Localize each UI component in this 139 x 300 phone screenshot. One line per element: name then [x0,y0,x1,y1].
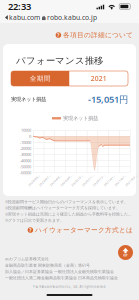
staticText: -20000 [20,146,31,151]
button[interactable]: 2021 [69,71,128,86]
staticText: 全期間 [30,74,51,83]
button[interactable]: 全期間 [11,71,69,86]
staticText: -15,051円 [88,93,128,105]
staticText: -40000 [20,158,31,163]
staticText: ※グラフは日次で更新されます。 [5,218,64,223]
button[interactable]: kabu.com [3,13,42,22]
staticText: 2020/07/03 [37,179,52,182]
staticText: 2020/09/07 [59,179,74,182]
staticText: 2021 [91,74,107,83]
staticText: ? [29,227,32,234]
staticText: 2021/03/26 [123,179,138,182]
staticText: 実現ネット損益 [63,115,98,122]
staticText: -10000 [20,140,31,145]
button[interactable]: ? [28,226,133,234]
staticText: 2021/01/19 [102,179,117,182]
staticText: kabu.com [9,13,40,22]
staticText: ※実現ネット損益は売買により確定した損益から手数料等を控除した… [5,211,131,217]
staticText: 金融商品取引業者 関東財務局長（金商）第61号 [5,263,90,268]
staticText: -60000 [20,170,31,175]
button[interactable]: ? [56,31,133,39]
button[interactable]: ページの先頭へ戻る [118,245,133,260]
staticText: 加入協会／日本証券業協会 一般社団法人金融先物取引業協会 [5,269,114,274]
staticText: 2020/08/05 [48,179,63,182]
staticText: 実現ネット損益 [11,96,46,102]
staticText: 22:33 [8,0,31,13]
staticText: © au Kabucom Securities Co., Ltd. All ri… [32,285,106,288]
staticText: ※投資顧問報酬はハイウォーターマーク方式を採用しています。 [5,205,120,210]
staticText: TOP [123,254,128,257]
staticText: 2020/11/11 [80,179,95,182]
staticText: 各項目の詳細について [63,31,133,39]
staticText: ※投資顧問サービス開始日からのパフォーマンスを表示しています。 [5,199,128,204]
staticText: ? [57,32,60,39]
staticText: 2021/02/22 [113,179,128,182]
staticText: robo.kabu.co.jp [47,13,97,22]
staticText: パフォーマンス推移 [16,55,103,66]
staticText: 10000 [21,128,31,133]
staticText: 一般社団法人第二種金融商品取引業協会 日本商品先物取引協会 [5,275,118,280]
staticText: -50000 [20,164,31,169]
staticText: 2020/10/08 [70,179,85,182]
staticText: 2020/06/01 [26,179,41,182]
staticText: 0 [29,134,31,139]
staticText: auカブコム証券株式会社 [5,256,49,261]
staticText: ハイウォーターマーク方式とは [35,226,133,234]
staticText: 2020/12/14 [91,179,106,182]
staticText: -30000 [20,152,31,157]
